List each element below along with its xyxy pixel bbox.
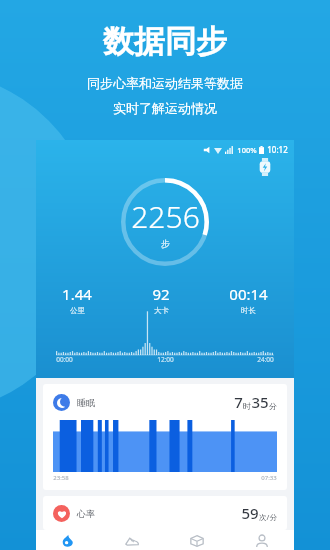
staticText: 实时了解运动情况 xyxy=(113,100,217,116)
button[interactable]: Connected watch xyxy=(258,158,272,176)
staticText: 00:00 xyxy=(56,355,73,364)
staticText: 100% xyxy=(237,145,257,155)
staticText: 7 xyxy=(234,392,243,412)
staticText: 92 xyxy=(152,284,170,304)
staticText: 00:14 xyxy=(229,284,268,304)
staticText: 大卡 xyxy=(154,306,169,315)
staticText: 心率 xyxy=(77,508,95,519)
staticText: 时长 xyxy=(241,306,256,315)
staticText: 12:00 xyxy=(157,355,174,364)
staticText: 35 xyxy=(251,392,269,412)
staticText: 2256 xyxy=(131,196,200,237)
staticText: 59 xyxy=(241,503,259,523)
button[interactable]: 我的 xyxy=(229,530,294,550)
staticText: 1.44 xyxy=(62,284,92,304)
staticText: 数据同步 xyxy=(103,22,227,61)
staticText: 07:33 xyxy=(261,474,277,482)
staticText: 分 xyxy=(269,401,277,411)
staticText: 24:00 xyxy=(257,355,274,364)
button[interactable]: 睡眠 xyxy=(43,384,287,490)
button[interactable]: 商城 xyxy=(164,530,229,550)
button[interactable]: 心率 xyxy=(43,496,287,530)
staticText: 10:12 xyxy=(267,144,288,155)
staticText: 睡眠 xyxy=(77,397,95,408)
staticText: 步 xyxy=(161,238,170,249)
staticText: 次/分 xyxy=(259,512,277,522)
staticText: 同步心率和运动结果等数据 xyxy=(87,75,243,91)
staticText: 23:58 xyxy=(53,474,69,482)
button[interactable]: 运动 xyxy=(100,530,164,550)
staticText: 公里 xyxy=(70,306,85,315)
button[interactable]: 自有 xyxy=(36,530,100,550)
staticText: 时 xyxy=(243,401,251,411)
